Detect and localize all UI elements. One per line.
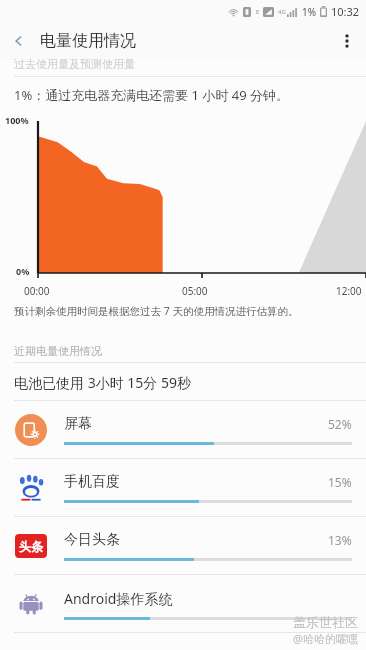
button[interactable]: 屏幕 — [0, 401, 366, 459]
staticText: Android操作系统 — [64, 589, 352, 608]
staticText: 预计剩余使用时间是根据您过去 7 天的使用情况进行估算的。 — [14, 304, 299, 318]
button[interactable]: 返回 — [0, 22, 38, 60]
staticText: 52% — [328, 416, 352, 432]
staticText: 1%：通过充电器充满电还需要 1 小时 49 分钟。 — [14, 86, 290, 104]
staticText: 今日头条 — [64, 531, 328, 549]
staticText: 0% — [16, 265, 30, 277]
staticText: 近期电量使用情况 — [14, 344, 102, 358]
button[interactable]: 更多选项 — [328, 22, 366, 60]
staticText: 手机百度 — [64, 473, 328, 491]
staticText: 12:00 — [336, 284, 362, 298]
staticText: 100% — [5, 114, 29, 126]
staticText: 10:32 — [331, 4, 360, 19]
staticText: 1% — [302, 5, 317, 19]
staticText: 头条 — [19, 539, 43, 554]
staticText: 电量使用情况 — [40, 31, 136, 51]
staticText: @哈哈的嚯嘿 — [293, 631, 358, 646]
staticText: E — [256, 8, 260, 16]
staticText: 过去使用量及预测使用量 — [14, 57, 135, 71]
staticText: 13% — [328, 532, 352, 548]
staticText: 4G — [278, 8, 286, 16]
staticText: 15% — [328, 474, 352, 490]
button[interactable]: Android操作系统 — [0, 575, 366, 633]
button[interactable]: 头条 — [0, 517, 366, 575]
staticText: 屏幕 — [64, 415, 328, 433]
button[interactable]: 电池已使用 3小时 15分 59秒 — [0, 363, 366, 401]
staticText: 00:00 — [24, 284, 50, 298]
staticText: 电池已使用 3小时 15分 59秒 — [14, 373, 191, 392]
staticText: 05:00 — [182, 284, 208, 298]
button[interactable]: 手机百度 — [0, 459, 366, 517]
staticText: 盖乐世社区 — [293, 614, 358, 630]
